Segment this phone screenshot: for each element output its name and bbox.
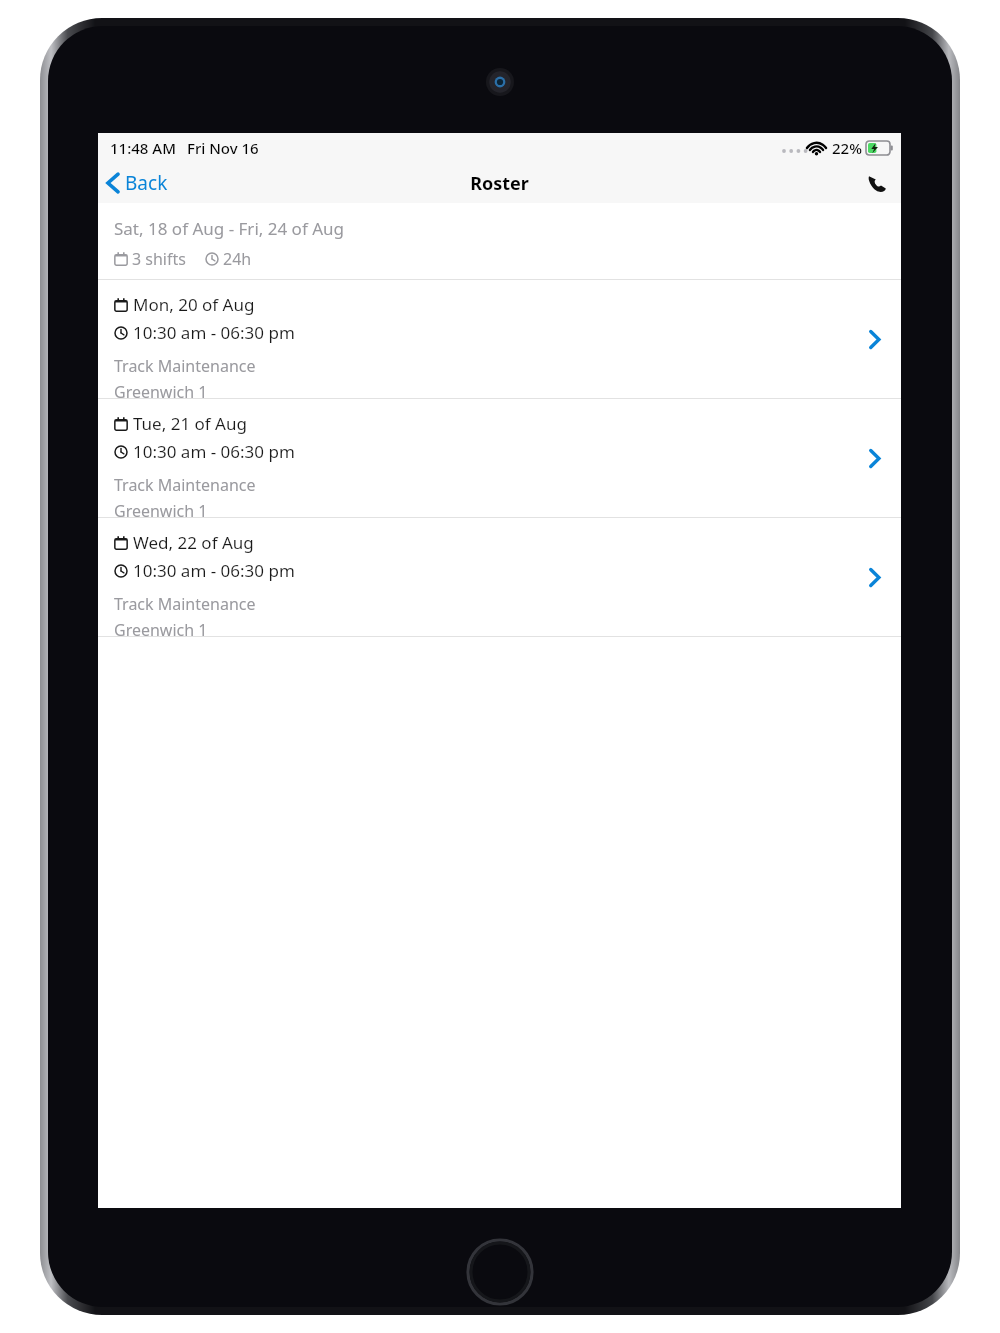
staticText: 22% [832,138,862,158]
staticText: 10:30 am - 06:30 pm [133,440,295,463]
button[interactable]: Call [853,163,901,203]
other: Open shift details [861,326,887,352]
staticText: Mon, 20 of Aug [133,293,255,316]
staticText: Sat, 18 of Aug - Fri, 24 of Aug [114,217,344,240]
staticText: Tue, 21 of Aug [133,412,247,435]
button[interactable]: Mon, 20 of Aug [98,280,901,398]
staticText: Greenwich 1 [114,381,208,398]
staticText: Greenwich 1 [114,500,208,517]
staticText: Back [125,170,168,196]
staticText: Greenwich 1 [114,619,208,636]
staticText: 3 shifts [132,248,186,270]
staticText: Fri Nov 16 [187,138,259,158]
button[interactable]: Back [98,163,180,203]
button[interactable]: Tue, 21 of Aug [98,399,901,517]
other: Open shift details [861,445,887,471]
staticText: Track Maintenance [114,474,256,496]
button[interactable]: Wed, 22 of Aug [98,518,901,636]
staticText: 11:48 AM [110,138,176,158]
other: Open shift details [861,564,887,590]
staticText: Roster [470,171,529,196]
staticText: 10:30 am - 06:30 pm [133,559,295,582]
staticText: Track Maintenance [114,355,256,377]
staticText: 24h [223,248,252,270]
staticText: Track Maintenance [114,593,256,615]
staticText: Wed, 22 of Aug [133,531,254,554]
staticText: 10:30 am - 06:30 pm [133,321,295,344]
